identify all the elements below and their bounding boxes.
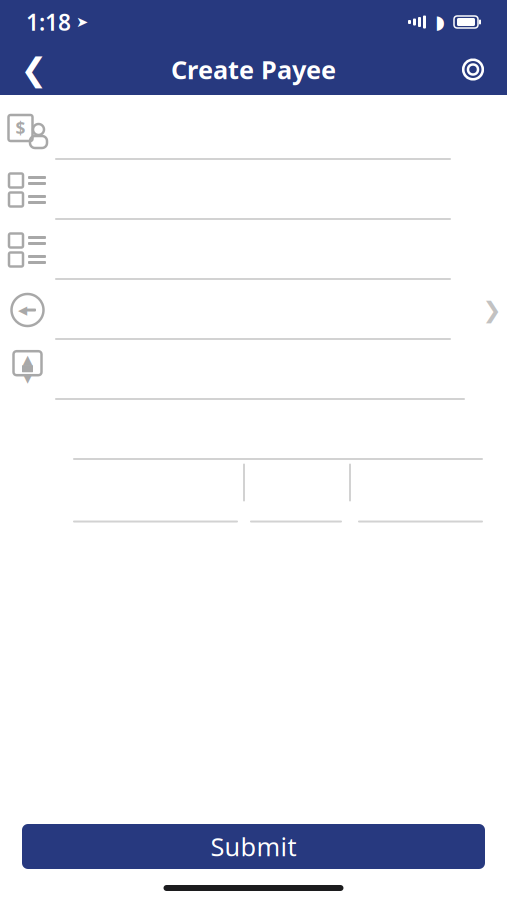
staticText: Create Payee xyxy=(171,53,336,86)
staticText: ◀ xyxy=(18,303,27,317)
staticText: ▲ xyxy=(22,352,32,367)
staticText: ❯ xyxy=(482,297,501,323)
staticText: ▼ xyxy=(23,371,32,385)
button[interactable]: Submit xyxy=(22,824,485,869)
staticText: ➤ xyxy=(76,14,88,30)
staticText: ◗ xyxy=(435,11,445,33)
staticText: ❮ xyxy=(20,51,47,88)
button[interactable]: Back xyxy=(8,44,60,94)
button[interactable]: Settings xyxy=(447,44,499,94)
staticText: 1:18 xyxy=(26,7,71,37)
staticText: Submit xyxy=(210,830,296,863)
staticText: $ xyxy=(15,116,25,139)
